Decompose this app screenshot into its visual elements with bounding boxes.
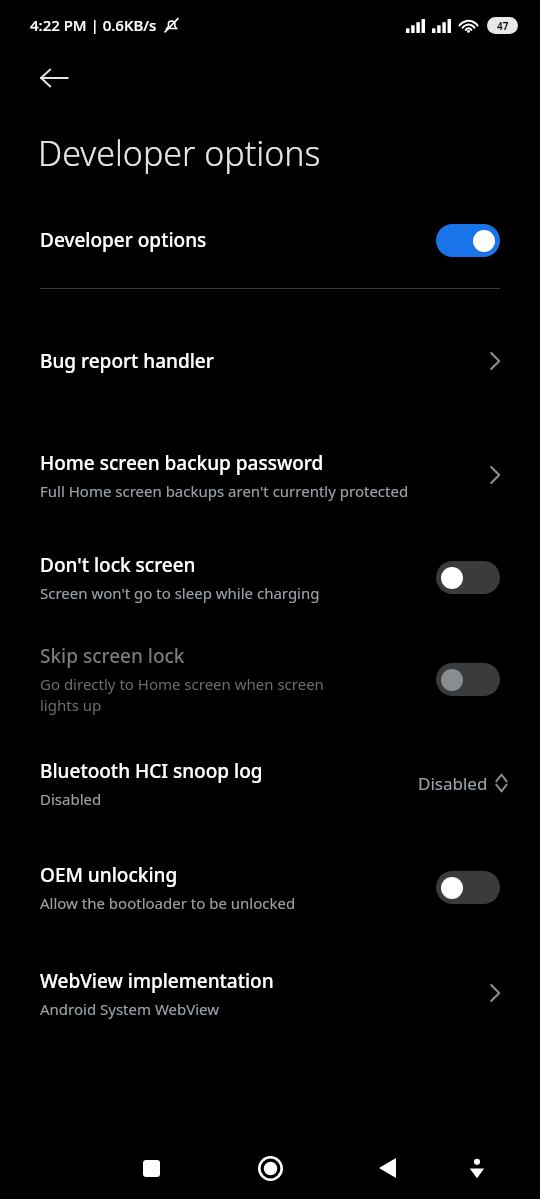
button[interactable]: Back (26, 50, 82, 106)
staticText: Allow the bootloader to be unlocked (40, 893, 296, 913)
staticText: 47 (497, 19, 509, 33)
button[interactable]: Home (246, 1144, 294, 1192)
other: Open (480, 346, 510, 376)
staticText: Don't lock screen (40, 552, 196, 578)
staticText: Bluetooth HCI snoop log (40, 758, 263, 784)
other: Open (480, 460, 510, 490)
button[interactable]: Developer options (0, 212, 540, 268)
button[interactable]: Recents (127, 1144, 175, 1192)
staticText: 4:22 PM | 0.6KB/s (30, 15, 157, 35)
staticText: Home screen backup password (40, 450, 324, 476)
button[interactable]: Bug report handler (0, 323, 540, 399)
staticText: Disabled (40, 789, 102, 809)
button[interactable]: Hide keyboard (453, 1144, 501, 1192)
staticText: Bug report handler (40, 348, 214, 374)
button[interactable]: Don't lock screen (0, 535, 540, 619)
staticText: OEM unlocking (40, 862, 178, 888)
staticText: Go directly to Home screen when screen l… (40, 674, 324, 716)
other: Open (480, 978, 510, 1008)
staticText: Developer options (40, 227, 207, 253)
staticText: WebView implementation (40, 968, 274, 994)
button[interactable]: Home screen backup password (0, 431, 540, 519)
button[interactable]: Skip screen lock (0, 627, 540, 731)
staticText: Full Home screen backups aren't currentl… (40, 481, 409, 501)
staticText: Skip screen lock (40, 643, 185, 669)
button[interactable]: OEM unlocking (0, 845, 540, 929)
button[interactable]: Back (363, 1144, 411, 1192)
button[interactable]: Bluetooth HCI snoop log (0, 741, 540, 825)
button[interactable]: WebView implementation (0, 951, 540, 1035)
staticText: Disabled (418, 772, 488, 795)
staticText: Developer options (38, 130, 321, 176)
staticText: Android System WebView (40, 999, 220, 1019)
staticText: Screen won't go to sleep while charging (40, 583, 320, 603)
